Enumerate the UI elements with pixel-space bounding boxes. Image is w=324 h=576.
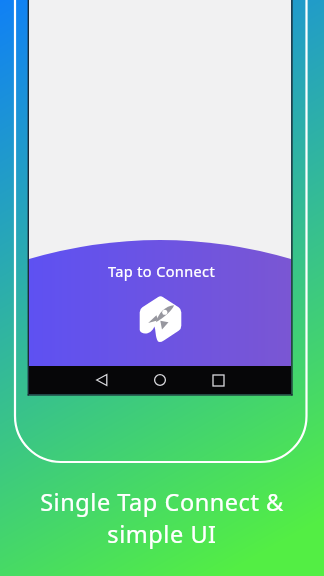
staticText: Tap to Connect xyxy=(108,261,216,281)
button[interactable]: Back xyxy=(89,367,115,393)
staticText: Single Tap Connect & simple UI xyxy=(40,486,284,550)
button[interactable]: Recents xyxy=(205,367,231,393)
button[interactable]: Connect xyxy=(136,292,188,350)
button[interactable]: Home xyxy=(147,367,173,393)
